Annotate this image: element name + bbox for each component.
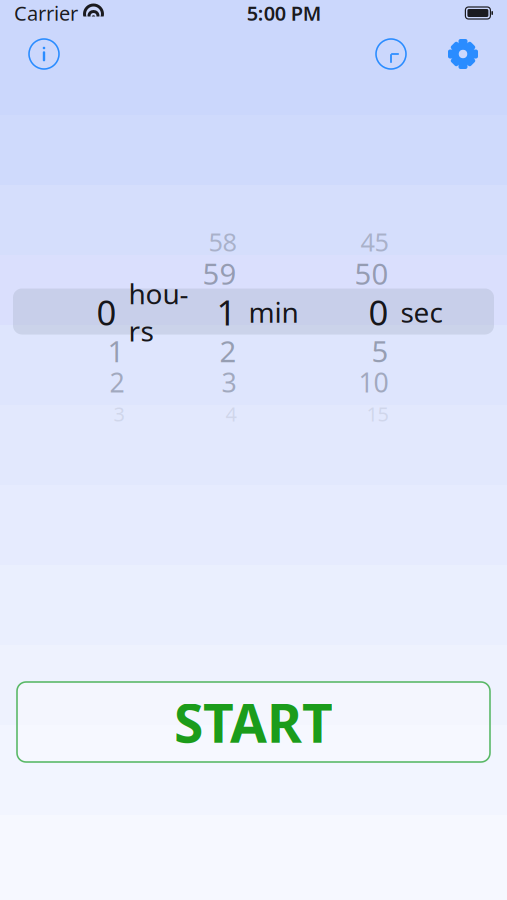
staticText: 2 [109,364,124,400]
staticText: 2 [219,331,236,370]
staticText: 0 [96,289,116,335]
staticText: 15 [366,400,388,427]
staticText: 1 [216,289,236,335]
button[interactable]: Info [20,30,68,78]
staticText: min [248,293,298,331]
button[interactable]: START [17,682,490,762]
staticText: sec [400,293,442,331]
button[interactable]: History [367,30,415,78]
staticText: START [174,687,333,757]
staticText: 58 [208,225,236,258]
staticText: 50 [354,254,388,293]
staticText: hours [128,275,188,349]
staticText: 3 [113,400,124,427]
staticText: 0 [368,289,388,335]
staticText: 45 [360,225,388,258]
staticText: 4 [225,400,236,427]
staticText: Carrier [14,0,78,26]
staticText: 10 [358,364,388,400]
staticText: 59 [202,254,236,293]
staticText: 3 [221,364,236,400]
staticText: 5 [371,331,388,370]
button[interactable]: Settings [439,30,487,78]
staticText: 5:00 PM [247,0,322,26]
staticText: 1 [107,331,124,370]
